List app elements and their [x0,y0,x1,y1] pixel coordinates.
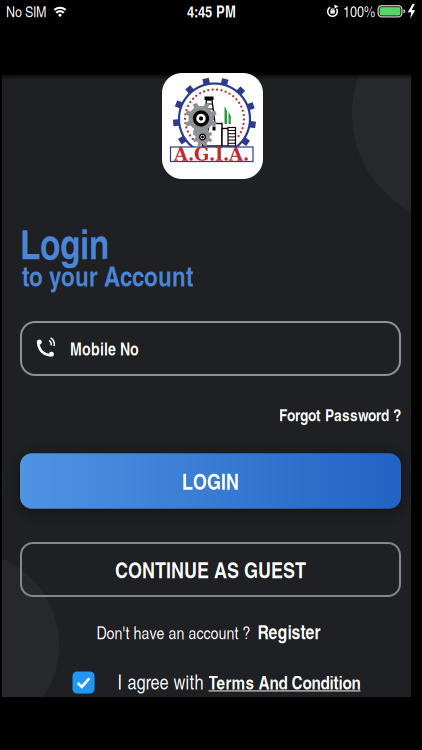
staticText: 100% [343,0,375,21]
staticText: 4:45 PM [187,0,236,22]
staticText: A.G.I.A. [174,144,249,165]
staticText: Register [257,618,320,645]
button[interactable]: Mobile No [20,321,401,376]
button[interactable]: CONTINUE AS GUEST [20,542,401,597]
button[interactable]: LOGIN [20,453,401,509]
staticText: LOGIN [182,465,239,497]
staticText: Don't have an account ? [96,620,250,644]
staticText: Forgot Password ? [279,403,401,426]
button[interactable]: Forgot Password ? [181,402,401,426]
staticText: Login [20,214,109,272]
staticText: Mobile No [70,336,139,361]
staticText: I agree with [117,668,203,695]
staticText: No SIM [6,0,46,21]
button[interactable]: I agree with Terms And Condition [72,671,94,693]
staticText: to your Account [22,256,193,295]
staticText: CONTINUE AS GUEST [115,554,306,585]
button[interactable]: Terms And Condition [208,669,360,695]
button[interactable]: Register [257,618,320,645]
staticText: Terms And Condition [208,669,360,695]
